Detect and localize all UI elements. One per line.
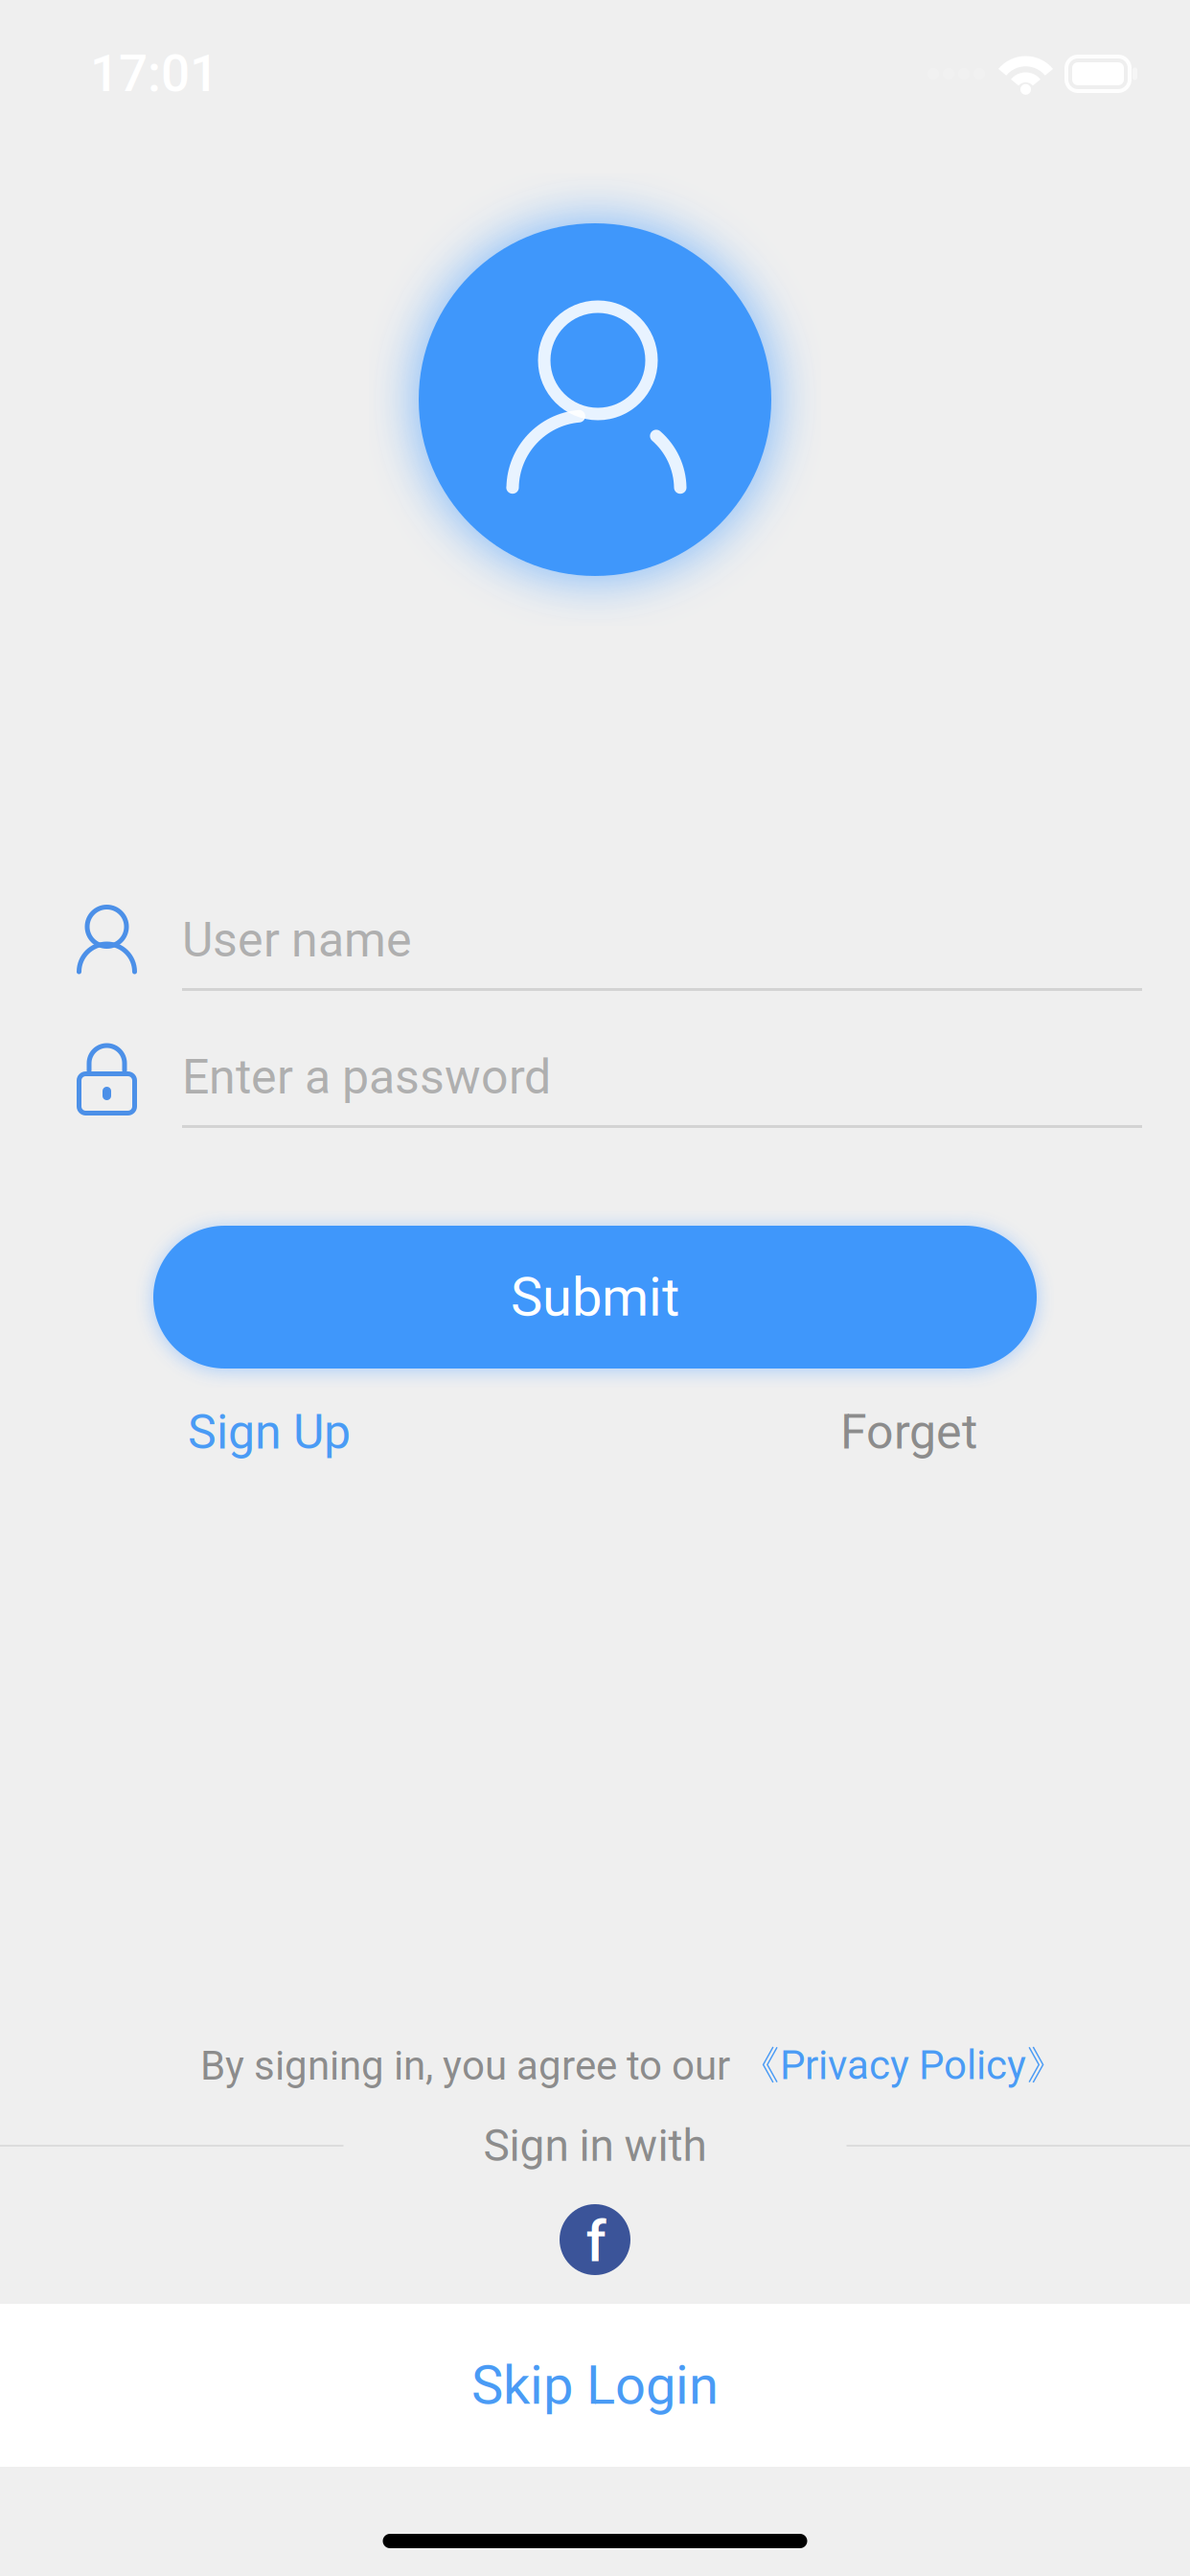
- staticText: User name: [182, 912, 412, 968]
- staticText: f: [586, 2208, 606, 2275]
- staticText: Enter a password: [182, 1049, 551, 1105]
- staticText: Sign in with: [483, 2120, 707, 2171]
- staticText: Forget: [840, 1404, 977, 1460]
- button[interactable]: Skip Login: [0, 2304, 1190, 2467]
- staticText: Sign Up: [188, 1404, 351, 1460]
- button[interactable]: Sign in with Facebook: [560, 2204, 630, 2275]
- button[interactable]: 《Privacy Policy》: [740, 2040, 1066, 2091]
- staticText: 《Privacy Policy》: [740, 2040, 1066, 2091]
- staticText: By signing in, you agree to our: [200, 2042, 740, 2089]
- button[interactable]: Sign Up: [188, 1396, 351, 1468]
- staticText: 17:01: [90, 44, 218, 103]
- button[interactable]: Forget: [840, 1396, 977, 1468]
- staticText: Skip Login: [471, 2354, 719, 2417]
- staticText: Submit: [511, 1266, 679, 1329]
- button[interactable]: Submit: [153, 1226, 1037, 1368]
